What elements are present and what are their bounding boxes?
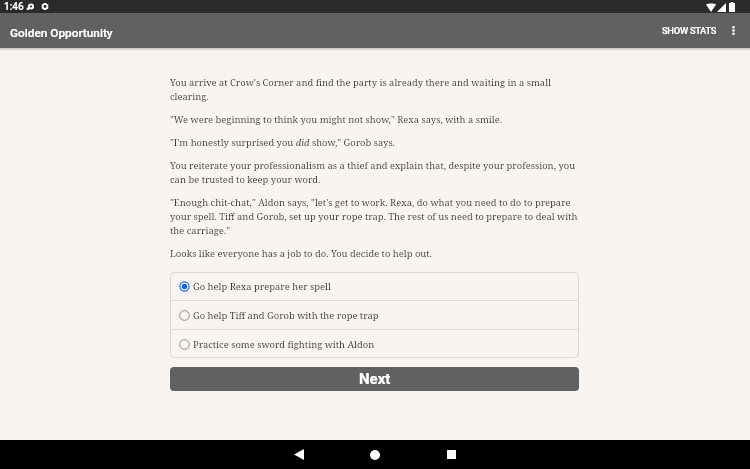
staticText: Go help Rexa prepare her spell <box>193 280 331 293</box>
staticText: You arrive at Crow's Corner and find the… <box>170 76 579 103</box>
button[interactable]: Practice some sword fighting with Aldon <box>170 330 579 358</box>
staticText: SHOW STATS <box>662 25 717 36</box>
staticText: Looks like everyone has a job to do. You… <box>170 247 432 260</box>
button[interactable]: Back <box>284 440 314 469</box>
staticText: "Enough chit-chat," Aldon says, "let's g… <box>170 196 579 237</box>
staticText: You reiterate your professionalism as a … <box>170 159 579 186</box>
staticText: Next <box>359 370 391 388</box>
staticText: "We were beginning to think you might no… <box>170 113 503 126</box>
staticText: 1:46 <box>4 1 24 13</box>
staticText: Practice some sword fighting with Aldon <box>193 338 375 351</box>
button[interactable]: Next <box>170 367 579 391</box>
button[interactable]: Go help Tiff and Gorob with the rope tra… <box>170 301 579 329</box>
button[interactable]: More options <box>717 13 750 48</box>
button[interactable]: Go help Rexa prepare her spell <box>170 272 579 300</box>
button[interactable]: Home <box>360 440 390 469</box>
staticText: "I'm honestly surprised you did show," G… <box>170 136 395 149</box>
staticText: Go help Tiff and Gorob with the rope tra… <box>193 309 379 322</box>
staticText: Golden Opportunity <box>10 26 113 40</box>
button[interactable]: SHOW STATS <box>654 16 717 45</box>
button[interactable]: Recent apps <box>436 440 466 469</box>
